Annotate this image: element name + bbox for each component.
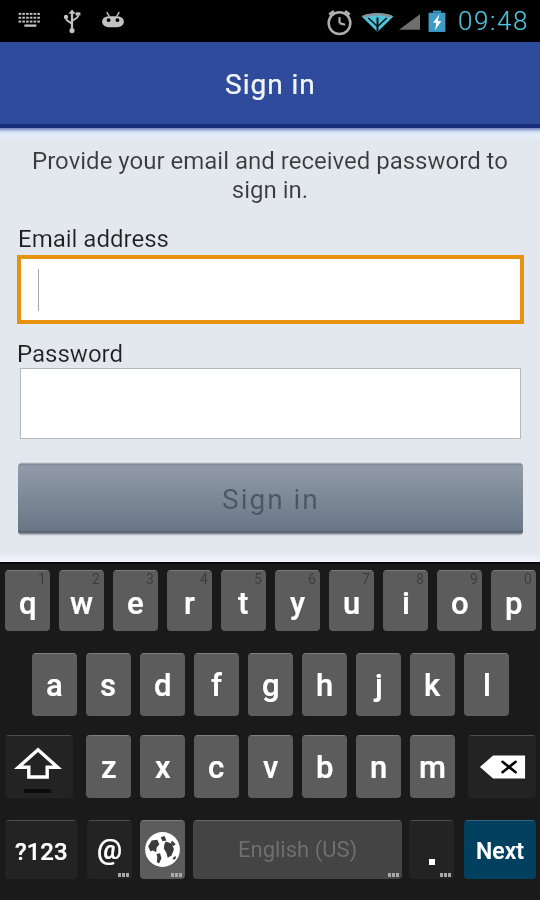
button[interactable]: a bbox=[32, 653, 77, 716]
staticText: Password bbox=[17, 340, 124, 368]
staticText: l bbox=[483, 667, 491, 703]
button[interactable]: Shift bbox=[5, 735, 73, 798]
staticText: 2 bbox=[92, 571, 100, 587]
button[interactable]: e bbox=[113, 570, 158, 631]
staticText: q bbox=[19, 585, 37, 621]
staticText: ?123 bbox=[15, 838, 68, 866]
staticText: i bbox=[402, 585, 410, 621]
staticText: o bbox=[451, 585, 469, 621]
staticText: English (US) bbox=[238, 837, 358, 863]
button[interactable]: b bbox=[302, 735, 347, 798]
button[interactable]: u bbox=[329, 570, 374, 631]
staticText: w bbox=[70, 585, 94, 621]
staticText: k bbox=[424, 667, 441, 703]
button[interactable]: k bbox=[410, 653, 455, 716]
button[interactable]: Next bbox=[464, 820, 536, 879]
button[interactable] bbox=[21, 259, 520, 320]
button[interactable]: l bbox=[464, 653, 509, 716]
staticText: a bbox=[46, 667, 63, 703]
button[interactable]: x bbox=[140, 735, 185, 798]
staticText: 6 bbox=[308, 571, 316, 587]
staticText: 1 bbox=[38, 571, 46, 587]
staticText: m bbox=[419, 749, 446, 785]
staticText: h bbox=[316, 667, 334, 703]
staticText: g bbox=[262, 667, 280, 703]
staticText: @ bbox=[97, 833, 123, 866]
staticText: y bbox=[290, 585, 306, 621]
button[interactable]: d bbox=[140, 653, 185, 716]
staticText: Sign in bbox=[222, 483, 320, 516]
button[interactable]: v bbox=[248, 735, 293, 798]
button[interactable]: r bbox=[167, 570, 212, 631]
button[interactable]: w bbox=[59, 570, 104, 631]
staticText: x bbox=[155, 749, 171, 785]
button[interactable]: Backspace bbox=[468, 735, 536, 798]
staticText: Sign in bbox=[225, 68, 316, 101]
staticText: f bbox=[211, 667, 222, 703]
staticText: 8 bbox=[416, 571, 424, 587]
staticText: 5 bbox=[254, 571, 262, 587]
staticText: Provide your email and received password… bbox=[22, 147, 518, 204]
button[interactable]: ?123 bbox=[5, 820, 77, 879]
button[interactable]: m bbox=[410, 735, 455, 798]
staticText: v bbox=[263, 749, 279, 785]
staticText: s bbox=[100, 667, 117, 703]
button[interactable]: c bbox=[194, 735, 239, 798]
button[interactable]: j bbox=[356, 653, 401, 716]
button[interactable]: q bbox=[5, 570, 50, 631]
button[interactable]: z bbox=[86, 735, 131, 798]
button[interactable]: Change language bbox=[140, 820, 185, 879]
staticText: 7 bbox=[362, 571, 370, 587]
button[interactable]: o bbox=[437, 570, 482, 631]
button[interactable]: h bbox=[302, 653, 347, 716]
staticText: z bbox=[101, 749, 117, 785]
button[interactable]: y bbox=[275, 570, 320, 631]
button[interactable]: g bbox=[248, 653, 293, 716]
staticText: 09:48 bbox=[458, 6, 530, 36]
staticText: Next bbox=[476, 838, 524, 865]
staticText: t bbox=[238, 585, 249, 621]
button[interactable]: Space bbox=[193, 820, 402, 879]
button[interactable]: t bbox=[221, 570, 266, 631]
staticText: 9 bbox=[470, 571, 478, 587]
staticText: u bbox=[343, 585, 361, 621]
button[interactable]: s bbox=[86, 653, 131, 716]
button[interactable]: n bbox=[356, 735, 401, 798]
button[interactable]: Period bbox=[409, 820, 454, 879]
button[interactable]: p bbox=[491, 570, 536, 631]
staticText: r bbox=[184, 585, 195, 621]
staticText: Email address bbox=[18, 225, 169, 253]
button[interactable]: Sign in bbox=[18, 462, 523, 536]
button[interactable]: @ bbox=[87, 820, 132, 879]
button[interactable]: f bbox=[194, 653, 239, 716]
staticText: 3 bbox=[146, 571, 154, 587]
staticText: p bbox=[505, 585, 523, 621]
staticText: 4 bbox=[200, 571, 208, 587]
staticText: e bbox=[127, 585, 144, 621]
staticText: n bbox=[370, 749, 388, 785]
staticText: c bbox=[208, 749, 225, 785]
staticText: b bbox=[316, 749, 334, 785]
button[interactable]: i bbox=[383, 570, 428, 631]
staticText: 0 bbox=[524, 571, 532, 587]
staticText: j bbox=[375, 667, 383, 703]
staticText: d bbox=[154, 667, 172, 703]
